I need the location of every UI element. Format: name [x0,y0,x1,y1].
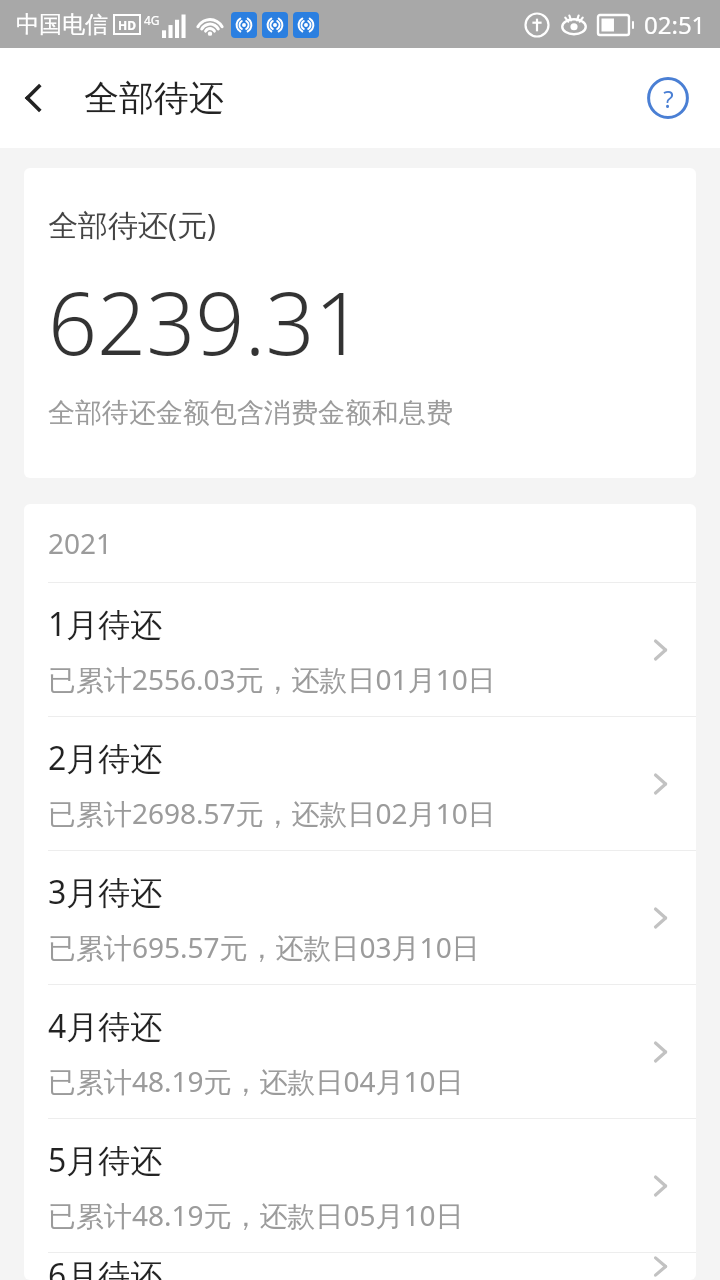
button[interactable]: 1月待还 [24,583,696,716]
staticText: 6239.31 [48,263,364,380]
button[interactable]: 6月待还 [24,1253,696,1280]
button[interactable]: 帮助 [642,72,694,124]
staticText: 4G [144,12,160,28]
button[interactable]: 2月待还 [24,717,696,850]
staticText: 5月待还 [48,1138,163,1182]
staticText: 6月待还 [48,1253,163,1280]
staticText: 2月待还 [48,736,163,780]
button[interactable]: 4月待还 [24,985,696,1118]
staticText: 已累计48.19元，还款日04月10日 [48,1062,464,1100]
button[interactable]: 全部待还(元) [24,168,696,478]
staticText: 3月待还 [48,870,163,914]
staticText: 02:51 [644,8,706,41]
staticText: 2021 [48,524,113,562]
staticText: 已累计695.57元，还款日03月10日 [48,928,480,966]
staticText: 4月待还 [48,1004,163,1048]
staticText: 全部待还金额包含消费金额和息费 [48,396,453,430]
staticText: ? [663,82,674,115]
staticText: 全部待还(元) [48,204,216,245]
button[interactable]: 5月待还 [24,1119,696,1252]
staticText: 1月待还 [48,602,163,646]
button[interactable]: 返回 [0,64,68,132]
staticText: 已累计2698.57元，还款日02月10日 [48,794,496,832]
staticText: 中国电信 [16,10,108,39]
staticText: 全部待还 [84,76,224,120]
staticText: 已累计2556.03元，还款日01月10日 [48,660,496,698]
button[interactable]: 3月待还 [24,851,696,984]
staticText: 已累计48.19元，还款日05月10日 [48,1196,464,1234]
staticText: HD [118,17,136,33]
